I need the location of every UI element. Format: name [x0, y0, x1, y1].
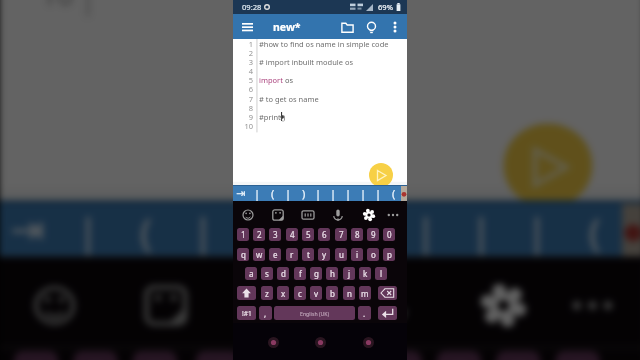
button[interactable]: 3	[132, 351, 177, 360]
button[interactable]: Voice input	[329, 206, 347, 224]
button[interactable]: k	[359, 267, 371, 280]
button[interactable]: b	[326, 286, 338, 300]
button[interactable]: Open navigation menu	[236, 16, 258, 38]
button[interactable]: GIF	[299, 206, 317, 224]
button[interactable]: |	[341, 185, 356, 201]
button[interactable]: |	[311, 185, 326, 201]
button[interactable]: |	[511, 200, 566, 256]
button[interactable]: Enter	[378, 306, 397, 320]
button[interactable]: Voice input	[355, 274, 422, 337]
button[interactable]: GIF	[244, 274, 311, 337]
button[interactable]: Keyboard settings	[360, 206, 378, 224]
button[interactable]: 8	[351, 228, 363, 241]
button[interactable]: 5	[302, 228, 314, 241]
button[interactable]: |	[371, 185, 386, 201]
button[interactable]: g	[310, 267, 322, 280]
button[interactable]: More	[559, 274, 626, 337]
button[interactable]: e	[269, 248, 281, 261]
button[interactable]: Emoji	[21, 274, 88, 337]
button[interactable]: |	[455, 200, 511, 256]
button[interactable]: i	[351, 248, 363, 261]
button[interactable]: l	[375, 267, 387, 280]
button[interactable]: |	[281, 185, 296, 201]
button[interactable]: f	[294, 267, 306, 280]
button[interactable]: Keyboard settings	[470, 274, 537, 337]
button[interactable]: |	[356, 185, 371, 201]
button[interactable]: |	[400, 200, 455, 256]
button[interactable]: 4	[196, 351, 240, 360]
button[interactable]: a	[245, 267, 257, 280]
button[interactable]: 1	[14, 351, 58, 360]
button[interactable]: c	[294, 286, 306, 300]
button[interactable]: Hints	[360, 16, 382, 38]
button[interactable]: 6	[318, 228, 330, 241]
button[interactable]: t	[302, 248, 314, 261]
button[interactable]: 4	[286, 228, 298, 241]
button[interactable]: Backspace	[378, 286, 397, 300]
button[interactable]: Recents	[265, 334, 281, 350]
button[interactable]: |	[288, 200, 344, 256]
button[interactable]: p	[383, 248, 395, 261]
button[interactable]: h	[326, 267, 338, 280]
button[interactable]: .	[358, 306, 371, 320]
button[interactable]: |	[344, 200, 399, 256]
button[interactable]: 0	[383, 228, 395, 241]
button[interactable]: Emoji	[239, 206, 257, 224]
button[interactable]: 3	[269, 228, 281, 241]
button[interactable]: 0	[555, 351, 600, 360]
button[interactable]: Stickers	[132, 274, 199, 337]
button[interactable]: (	[265, 185, 281, 201]
button[interactable]: More	[384, 206, 402, 224]
button[interactable]: Open file	[336, 16, 358, 38]
button[interactable]: o	[367, 248, 379, 261]
button[interactable]: English (UK)	[274, 306, 355, 320]
button[interactable]: ⇥	[233, 185, 249, 201]
button[interactable]: Close tab	[622, 200, 640, 256]
button[interactable]: |	[58, 200, 118, 256]
button[interactable]: More options	[384, 16, 406, 38]
button[interactable]: Shift	[237, 286, 256, 300]
button[interactable]: Close tab	[401, 185, 407, 201]
button[interactable]: 8	[437, 351, 481, 360]
button[interactable]: (	[118, 200, 177, 256]
button[interactable]: Run	[369, 163, 393, 187]
button[interactable]: z	[261, 286, 273, 300]
button[interactable]: !#1	[237, 306, 256, 320]
button[interactable]: n	[343, 286, 355, 300]
button[interactable]: |	[177, 200, 233, 256]
button[interactable]: )	[296, 185, 311, 201]
button[interactable]: u	[335, 248, 347, 261]
button[interactable]: s	[261, 267, 273, 280]
button[interactable]: 1	[237, 228, 249, 241]
button[interactable]: r	[286, 248, 298, 261]
button[interactable]: |	[249, 185, 265, 201]
button[interactable]: 9	[367, 228, 379, 241]
button[interactable]: w	[253, 248, 265, 261]
button[interactable]: (	[386, 185, 401, 201]
button[interactable]: 7	[377, 351, 422, 360]
button[interactable]: 7	[335, 228, 347, 241]
button[interactable]: v	[310, 286, 322, 300]
button[interactable]: Home	[312, 334, 328, 350]
staticText: |	[285, 186, 292, 201]
button[interactable]: 9	[496, 351, 540, 360]
button[interactable]: y	[318, 248, 330, 261]
button[interactable]: x	[277, 286, 289, 300]
button[interactable]: 2	[73, 351, 118, 360]
button[interactable]: |	[326, 185, 341, 201]
button[interactable]: Run	[503, 123, 592, 207]
button[interactable]: q	[237, 248, 249, 261]
button[interactable]: m	[359, 286, 371, 300]
staticText: 2	[257, 229, 262, 240]
button[interactable]: d	[277, 267, 289, 280]
button[interactable]: ,	[259, 306, 272, 320]
button[interactable]: j	[343, 267, 355, 280]
button[interactable]: )	[233, 200, 288, 256]
button[interactable]: Stickers	[269, 206, 287, 224]
button[interactable]: (	[566, 200, 622, 256]
button[interactable]: Back	[360, 334, 376, 350]
button[interactable]: ⇥	[0, 200, 58, 256]
button[interactable]: 2	[253, 228, 265, 241]
